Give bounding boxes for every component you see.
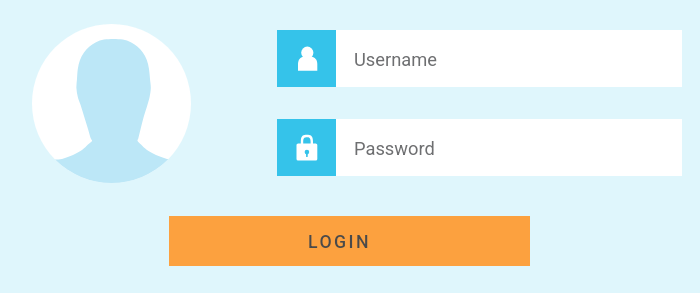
staticText: Username	[354, 49, 438, 70]
button[interactable]: Password	[277, 119, 682, 176]
staticText: LOGIN	[308, 232, 371, 253]
staticText: Password	[354, 138, 435, 159]
button[interactable]: LOGIN	[169, 216, 530, 266]
button[interactable]: Username	[277, 30, 682, 87]
